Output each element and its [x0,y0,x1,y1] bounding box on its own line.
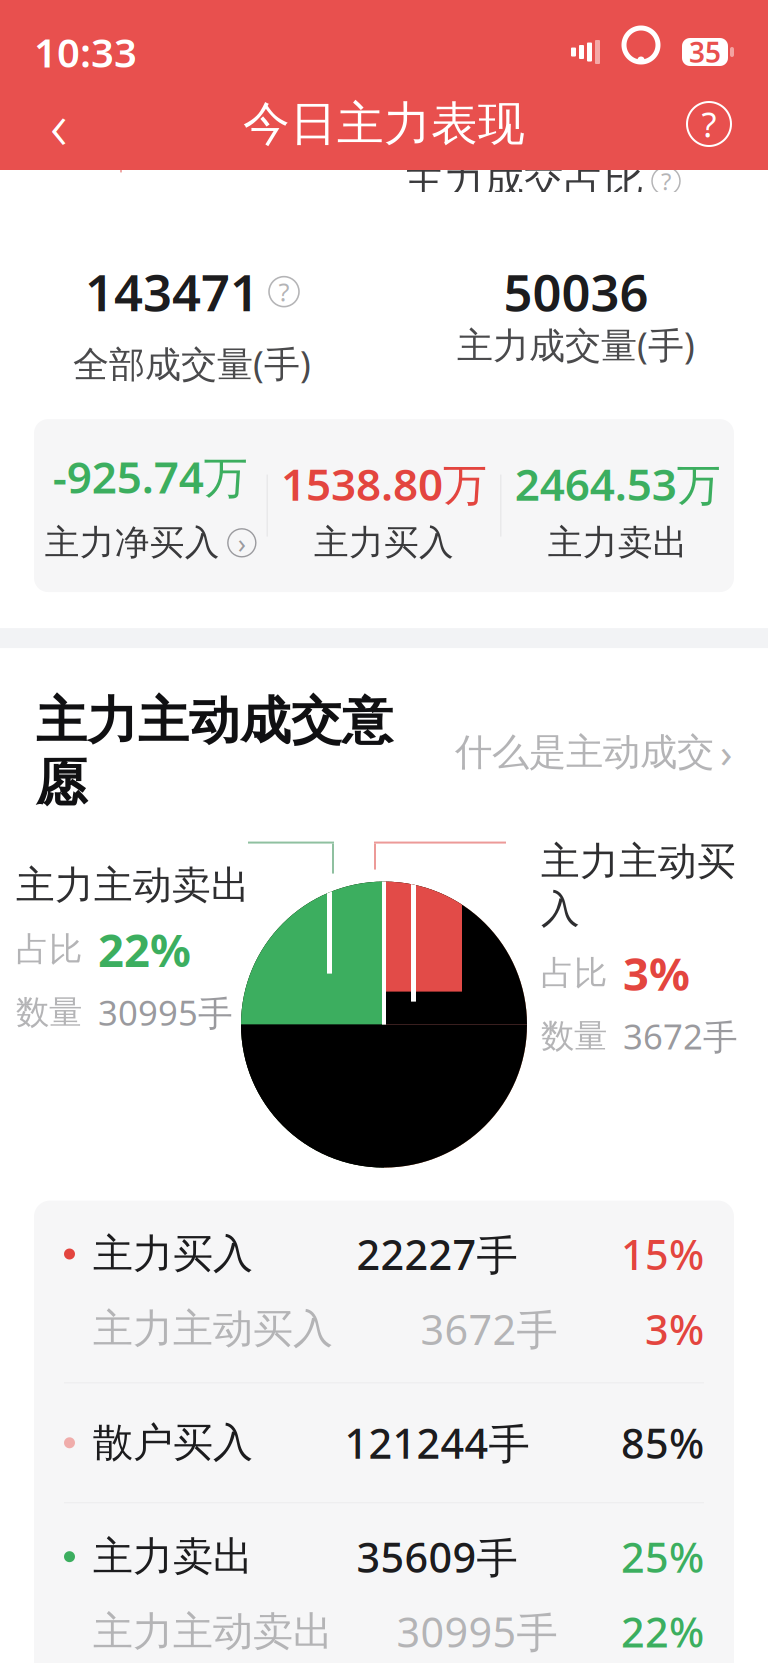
staticText: 主力买入 [93,1229,253,1278]
staticText: 3% [623,943,690,1003]
staticText: ? [701,101,716,147]
staticText: 3672手 [623,1013,738,1059]
staticText: 30995手 [98,989,233,1035]
staticText: 散户买入 [93,1418,253,1467]
staticText: 35 [689,33,721,71]
staticText: 主力成交量(手) [457,321,695,368]
button[interactable]: -925.74万 [34,447,267,564]
staticText: 主力成交占比 [404,156,644,205]
staticText: 25% [621,1529,704,1584]
staticText: 15% [621,1227,704,1281]
staticText: 50036 [503,258,648,325]
button[interactable]: 返回 [24,89,94,159]
button[interactable]: 什么是主动成交 [455,726,732,779]
staticText: 22227手 [356,1227,517,1281]
staticText: 主力卖出 [93,1532,253,1581]
staticText: ? [278,275,289,308]
staticText: › [720,726,732,779]
staticText: 今日主力表现 [243,95,525,153]
staticText: 22% [621,1604,704,1659]
staticText: 121244手 [344,1415,529,1470]
staticText: 主力主动卖出 [93,1607,333,1656]
staticText: ? [661,165,671,197]
staticText: › [238,525,246,560]
staticText: 3672手 [420,1301,557,1356]
staticText: 22% [98,919,191,979]
staticText: 主力主动买入 [541,838,736,933]
staticText: 全部成交量(手) [73,339,311,387]
button[interactable]: 帮助 [674,89,744,159]
staticText: 主力主动买入 [93,1304,333,1353]
staticText: ‹ [50,80,68,168]
staticText: -925.74万 [53,447,248,505]
staticText: 35609手 [356,1529,517,1584]
staticText: 主力主动卖出 [16,862,250,909]
staticText: 143471 [85,258,259,325]
button[interactable]: 全部成交量说明 [269,277,299,307]
staticText: 主力主动成交意愿 [36,690,393,815]
staticText: 10:33 [34,25,137,78]
staticText: 1538.80万 [281,454,487,513]
staticText: 什么是主动成交 [455,729,714,775]
staticText: 占比 [541,953,607,993]
staticText: 3% [645,1301,704,1356]
staticText: 85% [621,1415,704,1470]
staticText: 主力卖出 [548,521,688,564]
staticText: 数量 [16,992,82,1033]
staticText: 主力买入 [314,521,454,564]
staticText: 2464.53万 [515,454,721,513]
staticText: 主力净买入 [45,521,220,564]
staticText: 30995手 [396,1604,557,1659]
staticText: 数量 [541,1016,607,1057]
staticText: 占比 [16,929,82,970]
